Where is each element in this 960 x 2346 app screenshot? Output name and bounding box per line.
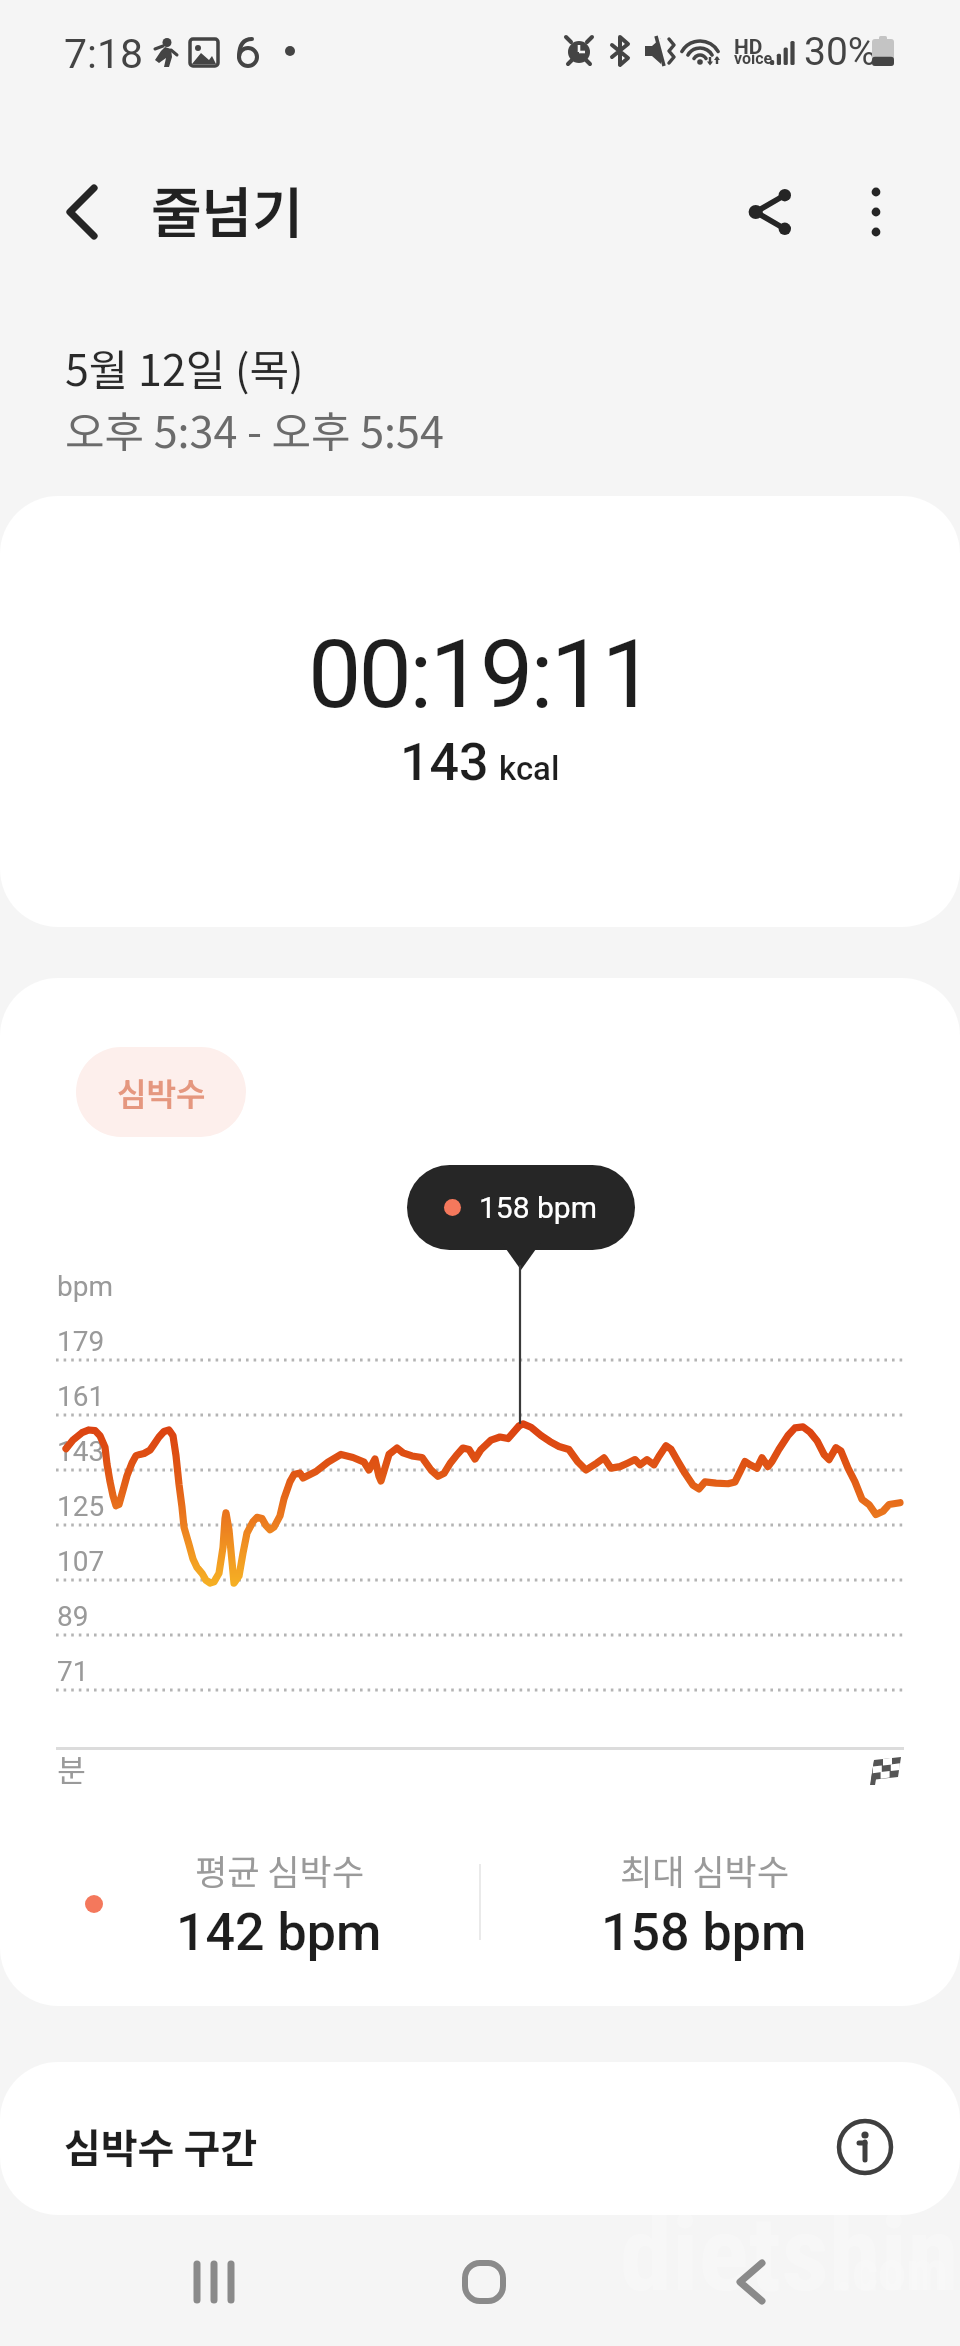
staticText: 평균 심박수 — [195, 1844, 364, 1895]
staticText: kcal — [499, 749, 560, 788]
staticText: 143 — [400, 732, 489, 793]
staticText: 107 — [57, 1545, 105, 1578]
button[interactable]: More options — [836, 170, 916, 254]
button[interactable]: Back — [691, 2232, 811, 2332]
staticText: 179 — [57, 1325, 105, 1358]
staticText: 7:18 — [64, 30, 144, 78]
staticText: 30% — [804, 29, 877, 75]
staticText: 142 bpm — [176, 1902, 382, 1963]
staticText: 161 — [57, 1380, 105, 1413]
staticText: 158 bpm — [601, 1902, 807, 1963]
button[interactable]: Recent apps — [154, 2232, 274, 2332]
staticText: 5월 12일 (목) — [65, 336, 304, 398]
staticText: 줄넘기 — [151, 169, 303, 249]
button[interactable]: Home — [424, 2232, 544, 2332]
staticText: voice — [734, 49, 773, 68]
staticText: 최대 심박수 — [620, 1844, 789, 1895]
staticText: 심박수 구간 — [64, 2117, 258, 2175]
staticText: 심박수 — [117, 1069, 206, 1115]
button[interactable]: 심박수 — [76, 1047, 246, 1137]
staticText: 125 — [57, 1490, 105, 1523]
staticText: 89 — [57, 1600, 89, 1633]
button[interactable]: Share — [728, 170, 812, 254]
staticText: 143 — [57, 1435, 105, 1468]
button[interactable]: Back — [42, 172, 122, 252]
staticText: dietshin — [620, 2194, 960, 2316]
staticText: 71 — [57, 1655, 89, 1688]
staticText: 오후 5:34 - 오후 5:54 — [65, 398, 444, 460]
staticText: 분 — [57, 1746, 86, 1791]
staticText: 158 bpm — [479, 1190, 598, 1225]
button[interactable]: 00:19:11 — [0, 496, 960, 927]
staticText: HD — [734, 35, 763, 60]
staticText: 00:19:11 — [0, 619, 960, 730]
staticText: bpm — [57, 1270, 113, 1303]
button[interactable]: 심박수 구간 — [0, 2062, 960, 2215]
button[interactable]: Information — [823, 2105, 907, 2189]
